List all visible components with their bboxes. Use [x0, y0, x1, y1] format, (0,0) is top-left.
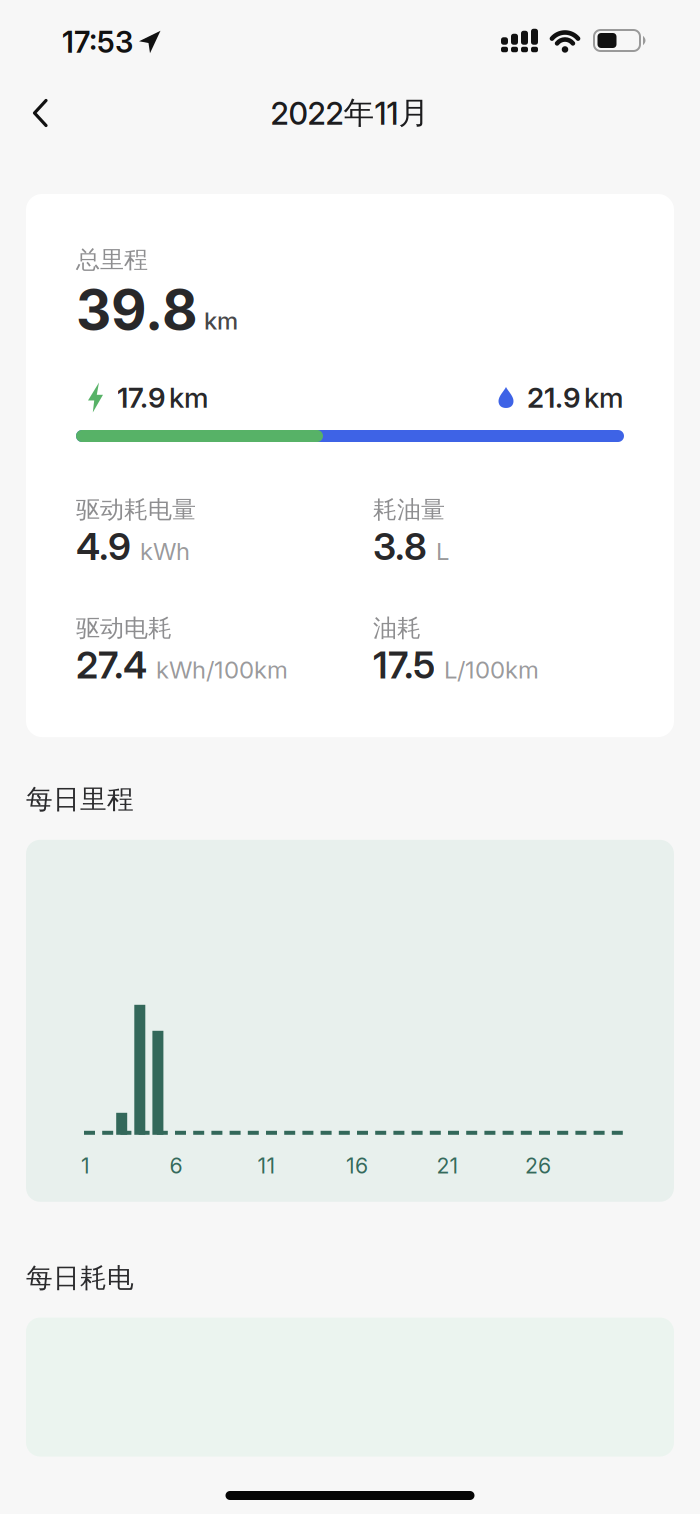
staticText: L	[436, 537, 449, 565]
staticText: 16	[346, 1153, 368, 1178]
staticText: km	[169, 381, 209, 414]
staticText: 4.9	[76, 524, 131, 568]
staticText: 21.9	[527, 381, 581, 414]
staticText: 26	[525, 1153, 551, 1178]
staticText: kWh	[140, 537, 190, 565]
staticText: L/100km	[444, 656, 539, 684]
button[interactable]: Back	[0, 87, 68, 139]
staticText: 驱动电耗	[76, 613, 172, 643]
staticText: 39.8	[76, 277, 198, 342]
staticText: 每日耗电	[26, 1262, 134, 1295]
staticText: km	[584, 381, 624, 414]
staticText: 27.4	[76, 643, 147, 687]
staticText: 油耗	[373, 613, 421, 643]
staticText: 总里程	[76, 245, 148, 274]
staticText: 2022年11月	[270, 94, 429, 132]
staticText: 21	[436, 1153, 458, 1178]
staticText: 每日里程	[26, 783, 134, 816]
staticText: 6	[169, 1153, 182, 1178]
staticText: 耗油量	[373, 495, 445, 524]
staticText: 17:53	[62, 25, 133, 59]
staticText: 驱动耗电量	[76, 495, 196, 524]
staticText: 17.9	[117, 381, 166, 414]
staticText: km	[204, 307, 238, 335]
staticText: kWh/100km	[156, 656, 288, 684]
staticText: 3.8	[373, 524, 427, 568]
staticText: 11	[257, 1153, 275, 1178]
staticText: 1	[81, 1153, 90, 1178]
staticText: 17.5	[373, 643, 435, 687]
